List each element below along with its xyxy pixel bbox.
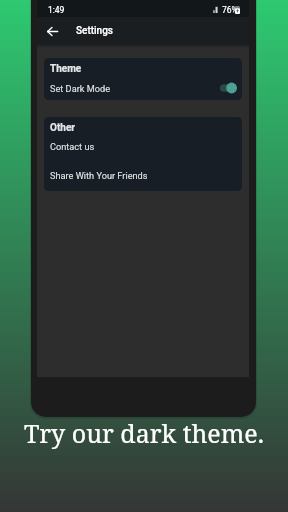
staticText: Settings xyxy=(76,25,114,37)
staticText: Set Dark Mode xyxy=(50,83,111,94)
staticText: Theme xyxy=(50,63,82,75)
button[interactable]: Back xyxy=(37,17,65,45)
button[interactable]: Share With Your Friends xyxy=(44,167,242,186)
staticText: Try our dark theme. xyxy=(24,416,264,450)
staticText: Share With Your Friends xyxy=(50,170,148,181)
staticText: 1:49 xyxy=(48,5,65,15)
staticText: Other xyxy=(50,122,75,134)
button[interactable]: Contact us xyxy=(44,138,242,157)
button[interactable]: Set Dark Mode xyxy=(44,77,242,98)
staticText: Contact us xyxy=(50,141,95,152)
staticText: 76% xyxy=(222,5,238,15)
